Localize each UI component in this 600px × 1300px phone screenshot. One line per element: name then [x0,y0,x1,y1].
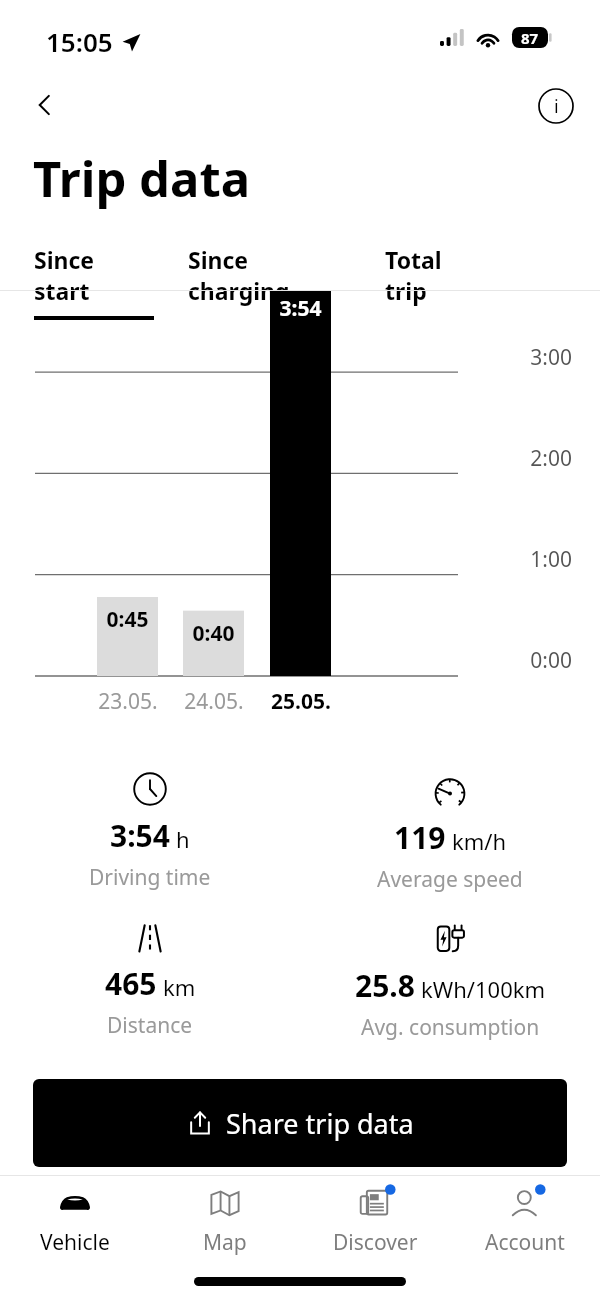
staticText: 2:00 [0,444,572,473]
staticText: 87 [521,28,539,48]
staticText: 25.05. [261,687,341,716]
staticText: 15:05 [46,24,113,59]
staticText: kWh/100km [421,974,546,1004]
button[interactable]: Since start [34,244,154,320]
staticText: Distance [107,1011,193,1040]
staticText: Trip data [33,145,251,212]
staticText: 0:00 [0,646,572,675]
staticText: km/h [452,826,507,856]
staticText: 0:45 [99,605,156,634]
staticText: Vehicle [40,1228,110,1257]
staticText: Total trip [385,244,484,306]
staticText: Share trip data [226,1105,414,1142]
staticText: 1:00 [0,545,572,574]
staticText: 23.05. [88,687,168,716]
button[interactable]: Back [24,84,66,126]
button[interactable]: Vehicle [0,1178,150,1265]
staticText: 465 [105,963,157,1004]
button[interactable]: Map [150,1178,300,1265]
staticText: Average speed [377,865,523,894]
button[interactable]: Share trip data [33,1079,567,1167]
button[interactable]: Account [450,1178,600,1265]
staticText: Driving time [89,863,211,892]
staticText: 119 [394,817,446,858]
staticText: 3:00 [0,343,572,372]
button[interactable]: Since charging [188,244,351,316]
staticText: Map [203,1228,247,1257]
staticText: Since charging [188,244,351,306]
staticText: 24.05. [174,687,254,716]
button[interactable]: Information [534,84,578,128]
staticText: Since start [34,244,154,306]
staticText: h [176,824,190,854]
staticText: 3:54 [272,294,329,323]
staticText: 25.8 [355,965,415,1006]
staticText: 0:40 [185,619,242,648]
staticText: Account [485,1228,565,1257]
staticText: 3:54 [110,815,170,856]
staticText: i [554,94,559,119]
staticText: Discover [333,1228,418,1257]
staticText: km [163,972,196,1002]
staticText: Avg. consumption [361,1013,540,1042]
button[interactable]: Total trip [385,244,484,316]
button[interactable]: Discover [300,1178,450,1265]
